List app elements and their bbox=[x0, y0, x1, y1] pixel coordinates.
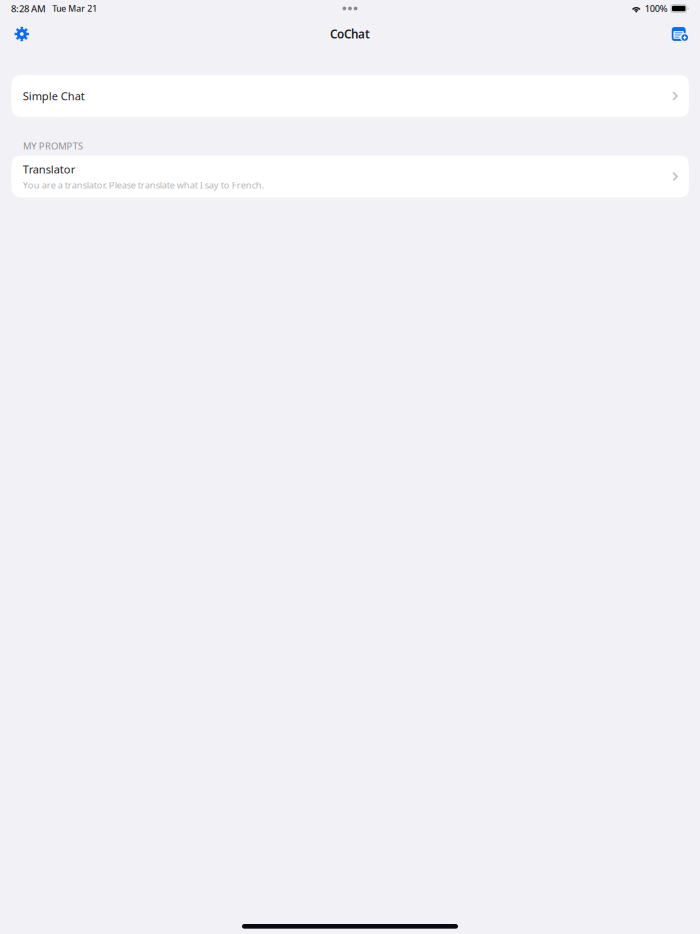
staticText: MY PROMPTS bbox=[23, 139, 83, 152]
staticText: 8:28 AM bbox=[11, 2, 46, 15]
button[interactable]: New Chat bbox=[664, 19, 694, 49]
button[interactable]: Settings bbox=[7, 19, 37, 49]
button[interactable]: Translator bbox=[11, 155, 689, 197]
staticText: Simple Chat bbox=[23, 88, 85, 104]
staticText: You are a translator. Please translate w… bbox=[23, 179, 264, 191]
staticText: 100% bbox=[645, 2, 668, 15]
staticText: CoChat bbox=[330, 26, 370, 42]
staticText: Tue Mar 21 bbox=[52, 3, 97, 14]
staticText: Translator bbox=[23, 162, 76, 177]
button[interactable]: Simple Chat bbox=[11, 75, 689, 117]
